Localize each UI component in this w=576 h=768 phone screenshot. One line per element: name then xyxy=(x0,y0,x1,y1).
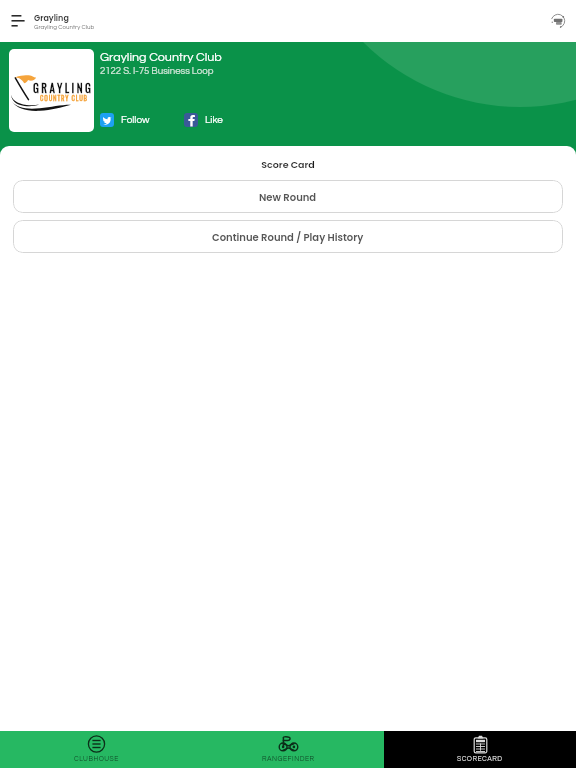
button[interactable]: Follow xyxy=(100,113,150,127)
button[interactable]: RANGEFINDER xyxy=(192,731,384,768)
button[interactable]: Club profile xyxy=(546,9,570,33)
staticText: CLUBHOUSE xyxy=(74,755,119,762)
staticText: Like xyxy=(205,115,223,125)
button[interactable]: New Round xyxy=(13,180,563,213)
staticText: Grayling Country Club xyxy=(34,24,95,30)
staticText: Grayling Country Club xyxy=(100,51,222,64)
button[interactable]: Like xyxy=(184,113,223,127)
staticText: GRAYLING xyxy=(33,80,94,96)
staticText: SCORECARD xyxy=(457,755,503,762)
staticText: COUNTRY CLUB xyxy=(40,93,88,103)
button[interactable]: Continue Round / Play History xyxy=(13,220,563,253)
button[interactable]: SCORECARD xyxy=(384,731,576,768)
staticText: Score Card xyxy=(0,158,576,171)
button[interactable]: Open navigation menu xyxy=(4,9,32,33)
staticText: New Round xyxy=(259,190,317,204)
button[interactable]: CLUBHOUSE xyxy=(0,731,192,768)
staticText: Continue Round / Play History xyxy=(212,230,364,244)
staticText: RANGEFINDER xyxy=(262,755,315,762)
staticText: Follow xyxy=(121,115,150,125)
staticText: 2122 S. I-75 Business Loop xyxy=(100,66,214,76)
staticText: Grayling xyxy=(34,13,69,24)
